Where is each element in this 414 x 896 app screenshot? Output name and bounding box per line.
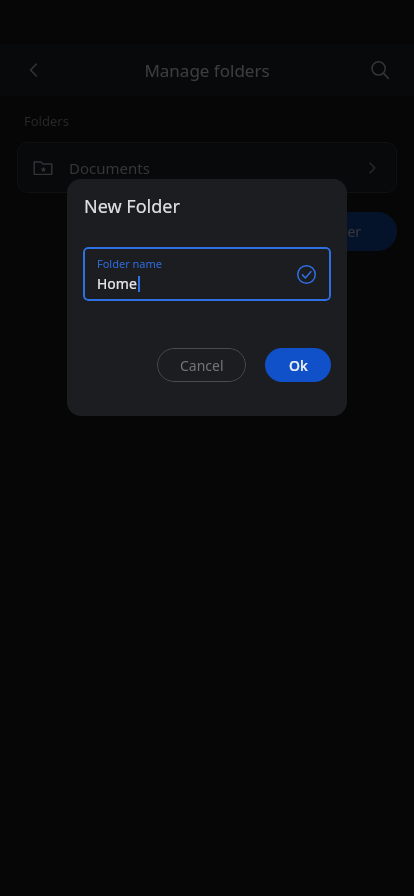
staticText: Folder name [97,256,163,271]
staticText: Ok [289,356,308,375]
staticText: New folder [289,222,362,241]
staticText: Manage folders [144,59,270,82]
staticText: New Folder [84,194,180,219]
staticText: Cancel [180,356,224,375]
button[interactable]: Ok [265,348,331,382]
staticText: Home [97,274,137,293]
button[interactable]: Documents [17,142,397,193]
button[interactable]: Cancel [157,348,246,382]
button[interactable]: New folder [253,212,397,251]
button[interactable]: Back [14,50,54,90]
button[interactable]: Confirm name [293,261,319,287]
staticText: Documents [69,158,363,178]
staticText: Folders [24,112,69,130]
button[interactable]: Search [360,50,400,90]
button[interactable]: Folder name [83,247,331,301]
